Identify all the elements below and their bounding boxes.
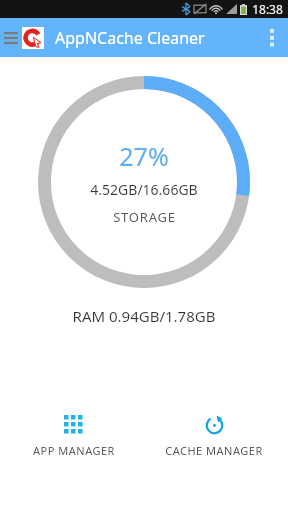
staticText: 18:38 [252,1,283,17]
staticText: STORAGE [113,208,176,226]
staticText: CACHE MANAGER [149,443,279,458]
staticText: RAM 0.94GB/1.78GB [0,306,288,326]
button[interactable]: APP MANAGER [9,411,139,462]
staticText: APP MANAGER [9,443,139,458]
button[interactable]: CACHE MANAGER [149,411,279,462]
button[interactable]: App icon [22,27,44,49]
button[interactable]: More options [256,18,288,57]
staticText: AppNCache Cleaner [55,27,205,49]
staticText: 4.52GB/16.66GB [90,180,198,199]
staticText: 27% [119,139,169,173]
button[interactable]: Menu [0,18,22,57]
